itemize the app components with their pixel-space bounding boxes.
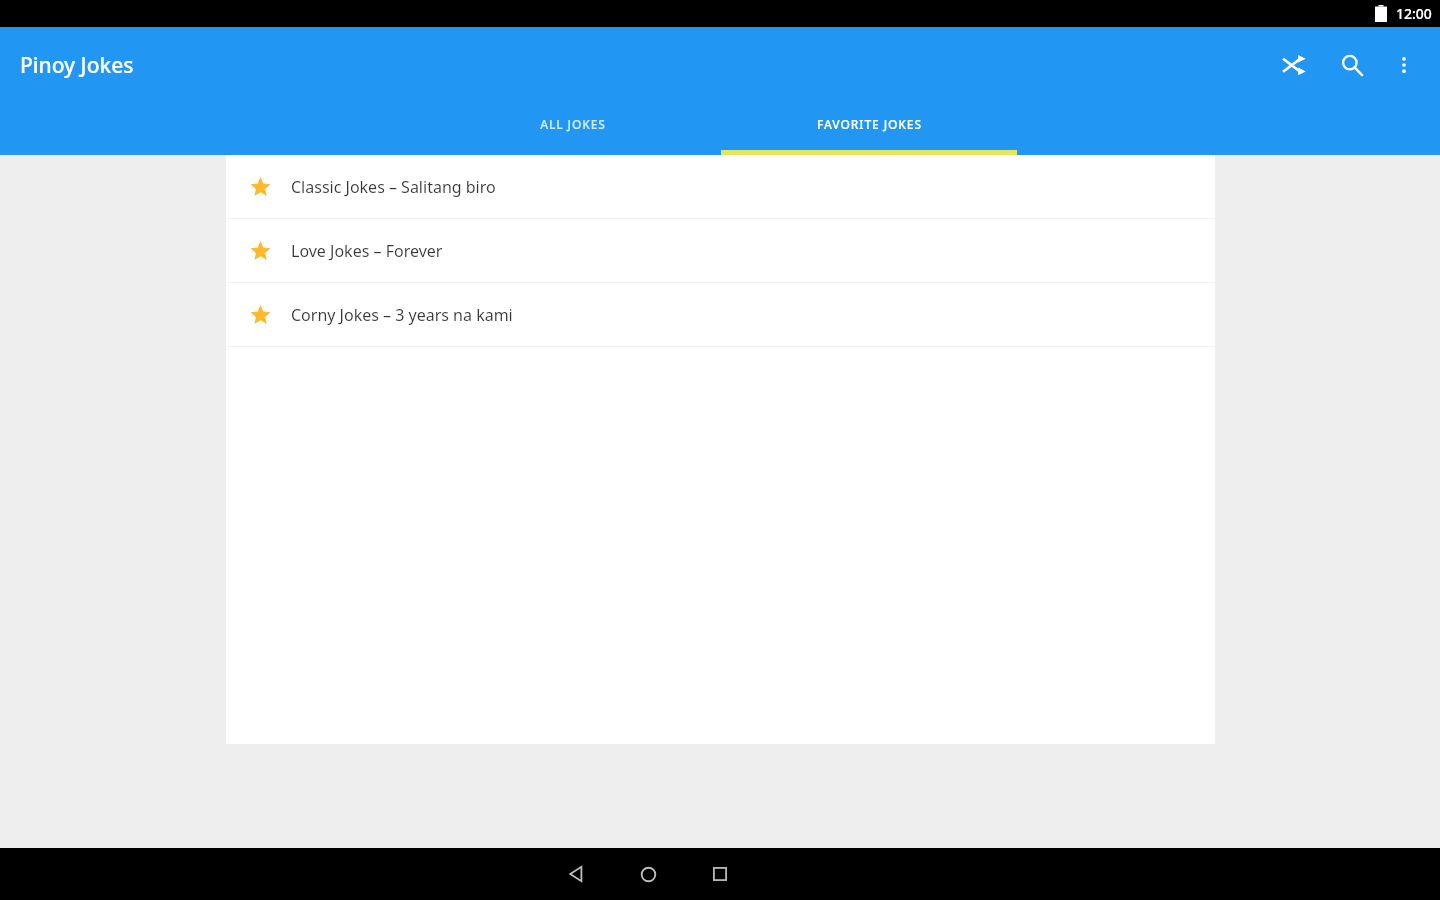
staticText: Pinoy Jokes (20, 51, 134, 80)
button[interactable]: Shuffle (1272, 43, 1316, 87)
button[interactable]: Favorite (226, 219, 1215, 282)
other: Favorite (248, 239, 272, 263)
staticText: ALL JOKES (540, 116, 606, 132)
button[interactable]: Home (612, 848, 684, 900)
staticText: Classic Jokes – Salitang biro (291, 176, 496, 198)
button[interactable]: Favorite (226, 283, 1215, 346)
button[interactable]: Favorite (226, 155, 1215, 218)
staticText: Corny Jokes – 3 years na kami (291, 304, 513, 326)
staticText: 12:00 (1396, 4, 1432, 23)
button[interactable]: FAVORITE JOKES (721, 103, 1017, 155)
staticText: FAVORITE JOKES (817, 116, 922, 132)
button[interactable]: Search (1330, 43, 1374, 87)
other: Favorite (248, 303, 272, 327)
staticText: Love Jokes – Forever (291, 240, 443, 262)
button[interactable]: More options (1382, 43, 1426, 87)
other: Favorite (248, 175, 272, 199)
button[interactable]: Recents (684, 848, 756, 900)
button[interactable]: Back (540, 848, 612, 900)
button[interactable]: ALL JOKES (425, 103, 721, 155)
